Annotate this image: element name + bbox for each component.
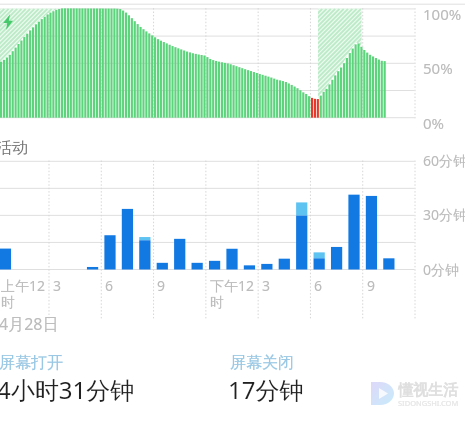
staticText: 6 xyxy=(105,276,114,295)
staticText: 0分钟 xyxy=(423,260,460,279)
staticText: 懂视生活 xyxy=(398,381,458,400)
staticText: 50% xyxy=(423,58,453,78)
staticText: 60分钟 xyxy=(423,151,465,170)
staticText: 下午12 时 xyxy=(210,276,255,311)
staticText: 屏幕关闭 xyxy=(230,353,294,373)
staticText: 6 xyxy=(314,276,323,295)
staticText: 17分钟 xyxy=(228,373,304,406)
staticText: 0% xyxy=(423,113,445,133)
staticText: 活动 xyxy=(0,138,28,158)
staticText: 9 xyxy=(157,276,166,295)
staticText: 上午12 时 xyxy=(1,276,46,311)
staticText: 9 xyxy=(367,276,376,295)
staticText: 3 xyxy=(53,276,62,295)
staticText: 屏幕打开 xyxy=(0,353,63,373)
staticText: 100% xyxy=(423,4,462,24)
staticText: 4月28日 xyxy=(0,313,59,335)
staticText: 4小时31分钟 xyxy=(0,373,135,406)
staticText: 30分钟 xyxy=(423,205,465,224)
staticText: 3 xyxy=(262,276,271,295)
staticText: SIDONGSHI.COM xyxy=(398,398,459,408)
